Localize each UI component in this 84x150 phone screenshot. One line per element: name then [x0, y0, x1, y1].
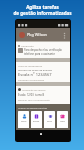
button[interactable]: Mais: [57, 111, 68, 128]
button[interactable]: Notificação: [16, 42, 70, 58]
button[interactable]: Perfil: [18, 111, 29, 128]
button[interactable]: More options: [61, 31, 68, 38]
staticText: Escala nº 1234567: [18, 72, 52, 77]
button[interactable]: Aviso de recebimento: [16, 62, 70, 82]
staticText: Aviso de recebimento: [18, 64, 43, 67]
staticText: Perfil: [21, 120, 27, 123]
button[interactable]: Escala: [31, 111, 42, 128]
staticText: Informe do prazo de entrega: [18, 68, 52, 71]
staticText: Pkg Wilson: [27, 32, 47, 37]
staticText: Escala: [33, 120, 40, 123]
staticText: Docs: [47, 120, 53, 123]
staticText: Acesso às demais funções: [18, 106, 48, 109]
button[interactable]: Docs: [44, 111, 55, 128]
staticText: verificar com a coordenação: [18, 98, 50, 101]
staticText: Escala 12/03 turno B: [18, 93, 45, 97]
staticText: Mais: [60, 120, 65, 123]
staticText: Agiliza tarefas: [26, 4, 59, 10]
staticText: conferido e processado: [18, 78, 45, 81]
button[interactable]: Pkg Wilson: [16, 28, 70, 41]
staticText: Notificação: [21, 44, 34, 47]
staticText: Para despacho e/ou verificação: [24, 48, 62, 52]
staticText: telefone para o assinante: [24, 52, 55, 56]
staticText: de gestão informatizadas: [13, 10, 72, 16]
staticText: Atribuição de serviço: [22, 88, 46, 91]
button[interactable]: Atribuição de serviço: [16, 86, 70, 104]
